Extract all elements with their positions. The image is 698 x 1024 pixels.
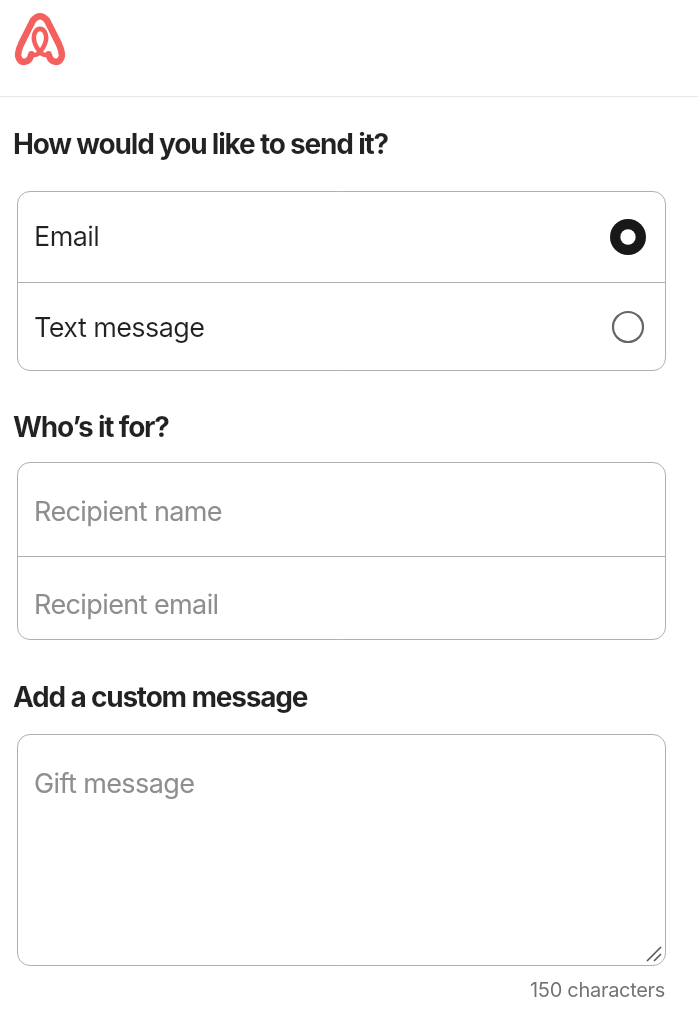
button[interactable]: Text message xyxy=(17,283,666,371)
staticText: 150 characters xyxy=(530,978,666,1002)
staticText: Recipient email xyxy=(34,588,219,621)
staticText: Recipient name xyxy=(34,495,222,528)
button[interactable]: Recipient email xyxy=(17,557,666,640)
button[interactable]: Gift message xyxy=(17,734,666,966)
staticText: Who’s it for? xyxy=(13,410,169,444)
button[interactable]: Recipient name xyxy=(17,462,666,556)
staticText: Gift message xyxy=(34,767,195,800)
button[interactable] xyxy=(13,9,67,67)
button[interactable]: Email xyxy=(17,191,666,282)
staticText: Add a custom message xyxy=(13,680,308,714)
staticText: Email xyxy=(34,220,100,253)
staticText: How would you like to send it? xyxy=(13,127,389,161)
staticText: Text message xyxy=(34,311,205,344)
